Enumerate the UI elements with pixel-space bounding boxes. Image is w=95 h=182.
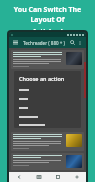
button[interactable] xyxy=(11,153,84,170)
button[interactable]: Bookmarks xyxy=(48,172,67,182)
staticText: Choose an action xyxy=(19,75,65,82)
staticText: Articles ! xyxy=(32,27,63,37)
button[interactable]: More options xyxy=(76,39,83,46)
button[interactable]: Open navigation menu xyxy=(12,39,19,46)
button[interactable] xyxy=(11,132,84,151)
staticText: Techreader ( 880 + ) xyxy=(23,40,65,46)
button[interactable]: Add xyxy=(67,172,86,182)
button[interactable]: Search xyxy=(69,39,76,46)
button[interactable] xyxy=(14,121,81,128)
staticText: You Can Switch The Layout Of xyxy=(3,5,92,25)
button[interactable] xyxy=(14,94,81,103)
button[interactable] xyxy=(14,103,81,112)
button[interactable] xyxy=(14,112,81,121)
button[interactable] xyxy=(14,85,81,94)
button[interactable]: Articles xyxy=(29,172,48,182)
button[interactable]: Back xyxy=(9,172,29,182)
button[interactable] xyxy=(11,50,84,69)
